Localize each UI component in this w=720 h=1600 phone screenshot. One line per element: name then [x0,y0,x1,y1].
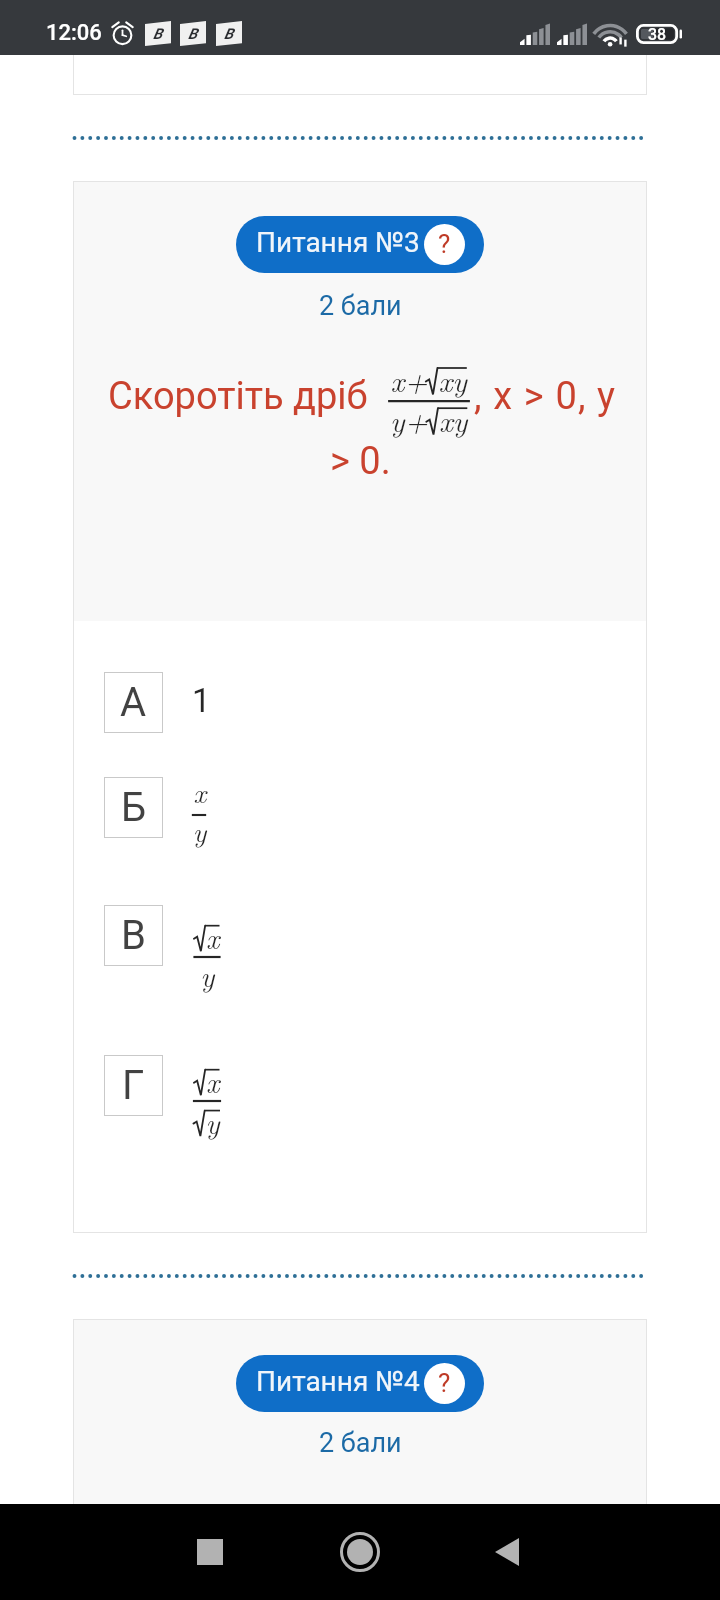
staticText: B [224,25,234,43]
staticText: 2 бали [319,1427,402,1459]
staticText: А [120,679,147,726]
button[interactable]: В [104,905,616,966]
staticText: 2 бали [319,290,402,322]
staticText: Питання №3 [256,226,420,259]
button[interactable]: Home [332,1524,388,1580]
staticText: B [153,25,163,43]
staticText: ? [438,229,451,259]
staticText: Скоротіть дріб [108,374,368,419]
staticText: 38 [648,25,667,44]
button[interactable]: Б [104,777,616,838]
staticText: , x > 0, y [474,374,617,419]
staticText: Б [121,784,147,831]
button[interactable]: Recent apps [186,1504,234,1600]
button[interactable]: А [104,672,616,733]
staticText: В [121,912,146,959]
staticText: Г [122,1062,145,1109]
button[interactable]: Help about this question [424,1363,465,1404]
staticText: > 0. [330,439,391,484]
button[interactable]: Питання №3 [236,216,484,273]
button[interactable]: Back [483,1504,531,1600]
button[interactable]: Г [104,1055,616,1116]
staticText: ? [438,1368,451,1398]
staticText: 12:06 [46,20,102,46]
staticText: 1 [192,681,211,720]
staticText: B [188,25,198,43]
button[interactable]: Питання №4 [236,1355,484,1412]
button[interactable]: Help about this question [424,224,465,265]
staticText: Питання №4 [256,1365,420,1398]
